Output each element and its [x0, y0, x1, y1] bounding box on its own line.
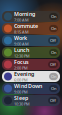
staticText: On	[51, 14, 56, 19]
staticText: 7:00 AM	[14, 17, 29, 23]
staticText: 2:00 PM	[14, 65, 28, 71]
button[interactable]: Morning	[2, 11, 60, 22]
button[interactable]: Focus	[2, 59, 60, 70]
staticText: On	[51, 74, 56, 79]
button[interactable]: Sleep	[2, 95, 60, 106]
staticText: Sleep	[14, 94, 28, 101]
staticText: Morning	[14, 10, 35, 17]
button[interactable]: Wind Down	[2, 83, 60, 94]
staticText: Lunch	[14, 46, 29, 53]
button[interactable]: Commute	[2, 23, 60, 34]
staticText: Evening	[14, 70, 34, 77]
staticText: Work	[14, 34, 27, 41]
staticText: On	[51, 26, 56, 31]
staticText: Off	[50, 98, 56, 103]
staticText: Wind Down	[14, 82, 42, 89]
staticText: On	[51, 50, 56, 55]
staticText: Commute	[14, 22, 38, 29]
staticText: 6:00 PM	[14, 77, 28, 83]
staticText: 8:15 AM	[14, 29, 29, 35]
staticText: 10:30 PM	[14, 101, 30, 107]
staticText: 9:00 AM	[14, 41, 29, 47]
staticText: Off	[50, 38, 56, 43]
staticText: On	[51, 86, 56, 91]
staticText: Focus	[14, 58, 29, 65]
button[interactable]: Lunch	[2, 47, 60, 58]
staticText: 12:30 PM	[14, 53, 30, 59]
staticText: 9:00 PM	[14, 89, 28, 95]
staticText: Off	[50, 62, 56, 67]
button[interactable]: Evening	[2, 71, 60, 82]
button[interactable]: Work	[2, 35, 60, 46]
